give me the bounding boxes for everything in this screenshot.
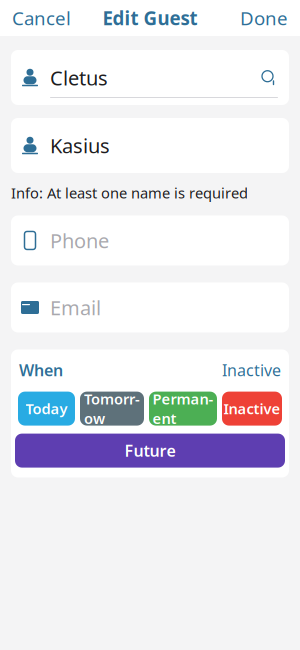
staticText: When [19,359,63,381]
button[interactable]: Cancel [0,0,83,39]
button[interactable]: Future [15,434,285,468]
staticText: Kasius [50,132,110,159]
staticText: Cancel [12,6,71,30]
staticText: Permanent [152,389,213,428]
button[interactable]: Permanent [149,392,217,426]
staticText: Done [240,6,288,30]
button[interactable]: Today [18,392,75,426]
button[interactable]: Search contacts [260,69,278,87]
staticText: Phone [50,227,109,254]
staticText: Edit Guest [102,6,197,30]
staticText: Inactive [223,399,280,418]
staticText: Email [50,294,101,321]
staticText: Tomorrow [84,389,140,428]
staticText: Info: At least one name is required [11,183,248,202]
button[interactable]: Tomorrow [80,392,144,426]
staticText: Today [25,399,67,418]
staticText: Cletus [50,64,108,91]
staticText: Inactive [222,359,281,381]
button[interactable]: Inactive [222,392,282,426]
staticText: Future [124,440,175,461]
button[interactable]: Done [228,0,300,39]
